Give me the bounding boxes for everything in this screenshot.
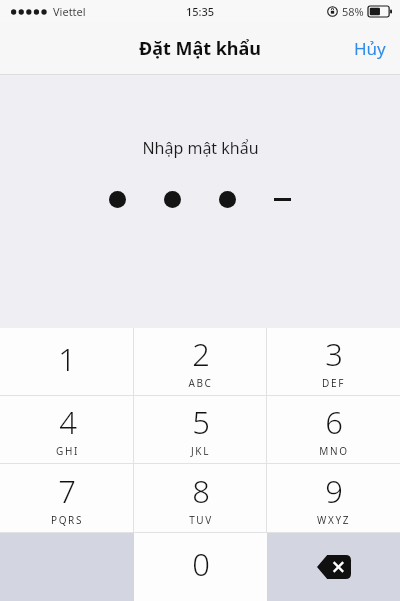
staticText: MNO xyxy=(319,444,349,458)
button[interactable]: Hủy xyxy=(340,27,400,70)
staticText: Hủy xyxy=(354,37,386,60)
staticText: 9 xyxy=(325,470,343,512)
staticText: 5 xyxy=(192,401,210,443)
staticText: 3 xyxy=(325,333,343,375)
button[interactable]: Delete xyxy=(267,533,400,601)
staticText: 2 xyxy=(192,333,210,375)
button[interactable]: 9 xyxy=(267,464,400,532)
button[interactable]: 5 xyxy=(134,396,267,463)
staticText: 7 xyxy=(58,470,76,512)
button[interactable]: 0 xyxy=(134,533,267,601)
staticText: 4 xyxy=(59,401,77,443)
staticText: 1 xyxy=(58,338,76,380)
staticText: Nhập mật khẩu xyxy=(142,137,259,159)
button[interactable]: 3 xyxy=(267,328,400,395)
button[interactable]: 7 xyxy=(0,464,134,532)
button[interactable]: 8 xyxy=(134,464,267,532)
staticText: 58% xyxy=(342,4,364,19)
staticText: PQRS xyxy=(51,513,83,527)
staticText: WXYZ xyxy=(317,513,350,527)
staticText: 8 xyxy=(192,470,210,512)
staticText: Đặt Mật khẩu xyxy=(139,36,262,61)
button[interactable]: 2 xyxy=(134,328,267,395)
staticText: Viettel xyxy=(53,4,86,19)
staticText: 15:35 xyxy=(186,4,215,19)
staticText: JKL xyxy=(191,444,210,458)
button[interactable]: 4 xyxy=(0,396,134,463)
staticText: 6 xyxy=(325,401,343,443)
button[interactable]: 6 xyxy=(267,396,400,463)
staticText: 0 xyxy=(192,543,210,585)
staticText: GHI xyxy=(56,444,79,458)
staticText: DEF xyxy=(322,376,345,390)
button[interactable]: 1 xyxy=(0,328,134,395)
staticText: ABC xyxy=(188,376,213,390)
staticText: TUV xyxy=(189,513,213,527)
